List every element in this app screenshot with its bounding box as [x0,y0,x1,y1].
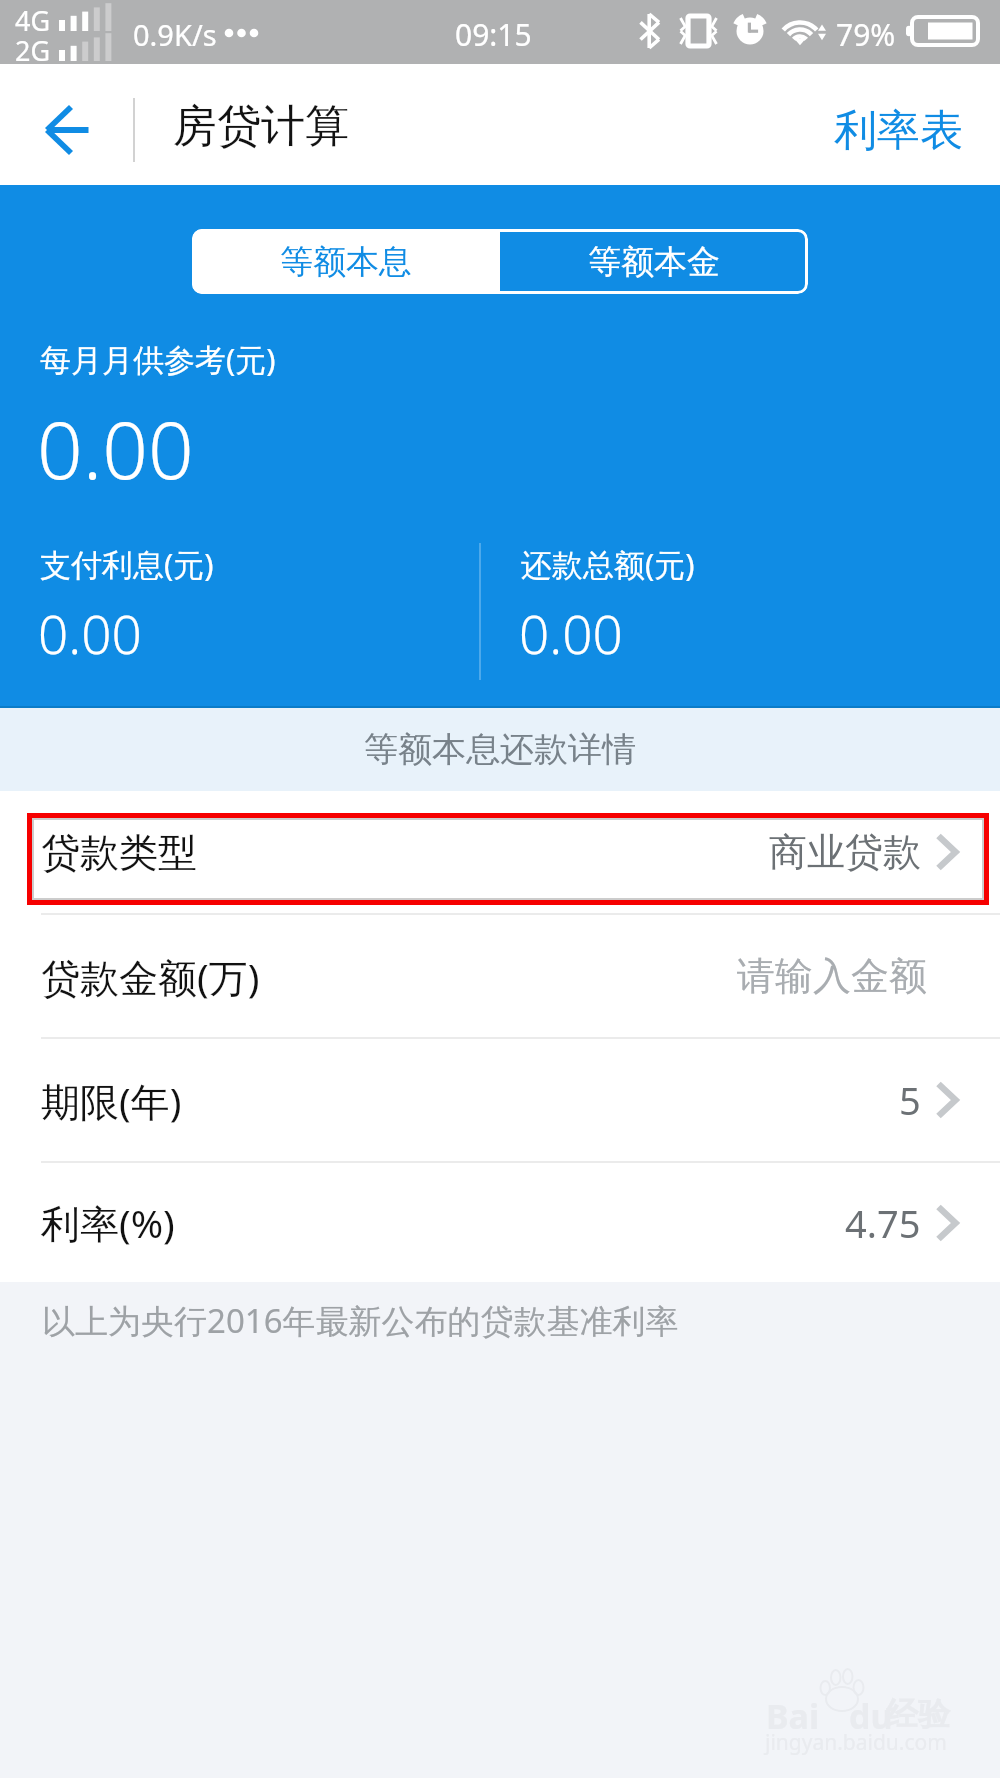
staticText: 0.00 [37,393,194,502]
staticText: 贷款金额(万) [41,950,260,1003]
staticText: 商业贷款 [769,828,921,876]
staticText: 期限(年) [41,1074,182,1127]
staticText: 79% [836,14,896,55]
button[interactable]: 贷款类型 [0,791,1000,913]
button[interactable]: 利率表 [794,64,1000,185]
staticText: 4G [15,2,51,39]
staticText: 4.75 [845,1197,921,1249]
button[interactable]: 利率(%) [0,1163,1000,1282]
staticText: Bai [766,1693,820,1739]
staticText: 利率表 [834,104,963,158]
staticText: 0.00 [38,597,142,669]
staticText: 等额本金 [588,241,720,283]
staticText: 经验 [886,1694,950,1734]
staticText: 支付利息(元) [40,543,214,585]
staticText: jingyan.baidu.com [765,1728,947,1757]
staticText: 09:15 [455,14,532,55]
staticText: 0.9K/s [133,15,217,54]
staticText: 利率(%) [41,1196,175,1249]
button[interactable]: 等额本息 [192,229,500,294]
staticText: 每月月供参考(元) [40,338,276,380]
staticText: 等额本息还款详情 [364,728,636,771]
staticText: 5 [899,1074,921,1126]
staticText: 贷款类型 [41,828,197,877]
staticText: 0.00 [519,597,623,669]
button[interactable]: 贷款金额(万) [0,915,1000,1037]
staticText: 2G [15,32,51,69]
staticText: du [849,1693,893,1739]
staticText: 请输入金额 [737,952,927,1000]
button[interactable]: 期限(年) [0,1039,1000,1161]
staticText: 还款总额(元) [521,543,695,585]
button[interactable]: Back [7,64,127,185]
button[interactable]: 等额本金 [500,229,808,294]
staticText: 以上为央行2016年最新公布的贷款基准利率 [42,1298,679,1343]
staticText: 等额本息 [280,241,412,283]
staticText: 房贷计算 [173,99,349,154]
